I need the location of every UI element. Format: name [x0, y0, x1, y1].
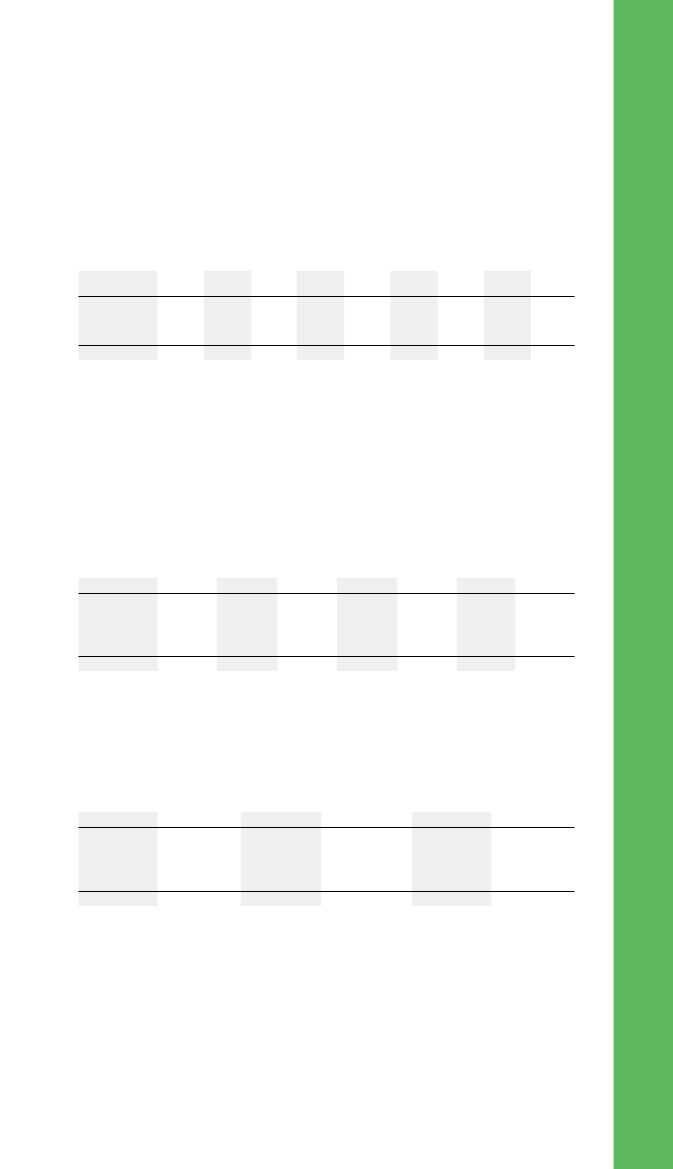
- button[interactable]: Data table 2: [79, 578, 575, 671]
- button[interactable]: Data table 3: [79, 812, 575, 906]
- button[interactable]: Data table 1: [79, 271, 575, 360]
